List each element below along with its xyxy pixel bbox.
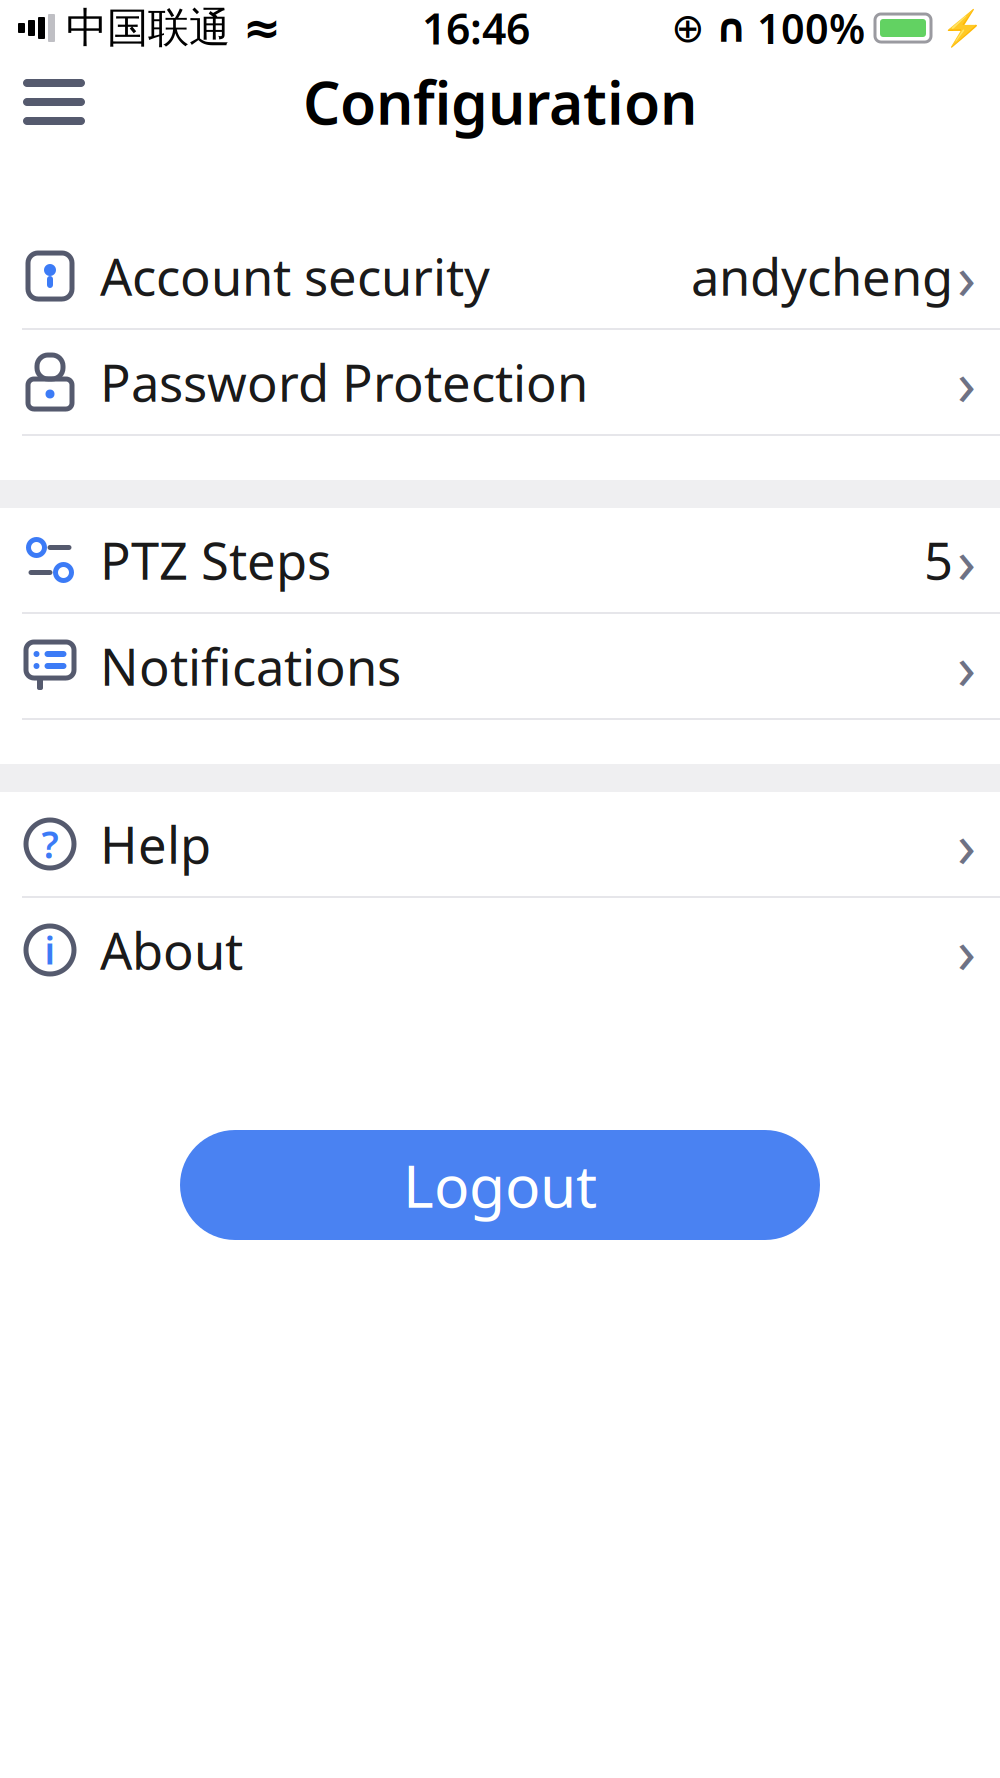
- button[interactable]: ?: [0, 792, 1000, 898]
- button[interactable]: Password Protection: [0, 330, 1000, 436]
- staticText: 中国联通: [66, 3, 230, 53]
- staticText: 100%: [757, 1, 865, 55]
- staticText: 16:46: [422, 0, 530, 56]
- staticText: PTZ Steps: [100, 526, 331, 594]
- staticText: ›: [957, 909, 976, 991]
- staticText: ≈: [243, 2, 281, 54]
- button[interactable]: Account security: [0, 224, 1000, 330]
- staticText: Password Protection: [100, 348, 588, 416]
- staticText: ›: [957, 341, 976, 423]
- staticText: ∩: [715, 5, 747, 51]
- button[interactable]: Logout: [180, 1130, 820, 1240]
- staticText: i: [44, 925, 55, 975]
- staticText: About: [100, 916, 243, 984]
- staticText: Logout: [403, 1146, 597, 1224]
- staticText: ⊕: [671, 5, 705, 51]
- staticText: Configuration: [303, 63, 697, 141]
- staticText: 5: [924, 526, 953, 594]
- staticText: ›: [957, 235, 976, 317]
- button[interactable]: Notifications: [0, 614, 1000, 720]
- staticText: Help: [100, 810, 211, 878]
- staticText: andycheng: [691, 242, 953, 310]
- button[interactable]: PTZ Steps: [0, 508, 1000, 614]
- staticText: ›: [957, 519, 976, 601]
- staticText: ?: [41, 819, 58, 869]
- staticText: ⚡: [941, 8, 984, 48]
- staticText: ›: [957, 803, 976, 885]
- staticText: Account security: [100, 242, 490, 310]
- staticText: ›: [957, 625, 976, 707]
- button[interactable]: Menu: [6, 57, 102, 147]
- button[interactable]: i: [0, 898, 1000, 1004]
- staticText: Notifications: [100, 632, 401, 700]
